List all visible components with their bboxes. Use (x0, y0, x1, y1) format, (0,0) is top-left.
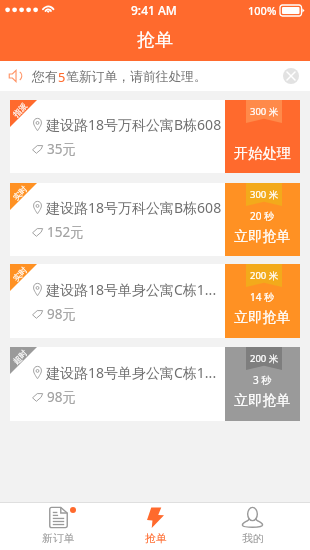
button[interactable]: 14 秒 (225, 264, 300, 338)
staticText: 建设路18号万科公寓B栋608 (46, 198, 222, 217)
staticText: 超时 (11, 348, 29, 366)
button[interactable]: 20 秒 (225, 183, 300, 256)
button[interactable]: 建设路18号万科公寓B栋608 (10, 183, 300, 256)
staticText: 建设路18号单身公寓C栋1... (46, 363, 217, 382)
button[interactable]: 关闭 (283, 68, 299, 84)
button[interactable]: 3 秒 (225, 347, 300, 421)
staticText: 300 米 (250, 105, 279, 118)
staticText: 5 (58, 68, 66, 85)
staticText: 立即抢单 (234, 308, 291, 326)
staticText: 开始处理 (234, 144, 291, 162)
staticText: 300 米 (250, 188, 279, 201)
staticText: 9:41 AM (131, 2, 177, 18)
staticText: 建设路18号单身公寓C栋1... (46, 280, 217, 299)
staticText: 实时 (11, 265, 29, 283)
button[interactable]: 建设路18号单身公寓C栋1... (10, 264, 300, 338)
staticText: 立即抢单 (234, 227, 291, 245)
button[interactable]: 开始处理 (225, 100, 300, 173)
button[interactable]: 建设路18号单身公寓C栋1... (10, 347, 300, 421)
staticText: 14 秒 (250, 290, 275, 304)
staticText: 200 米 (250, 269, 279, 282)
staticText: 152元 (47, 223, 84, 241)
staticText: 立即抢单 (234, 391, 291, 409)
staticText: 35元 (47, 140, 76, 158)
staticText: 我的 (242, 532, 264, 546)
staticText: 200 米 (250, 352, 279, 365)
staticText: 笔新订单，请前往处理。 (66, 69, 207, 85)
staticText: 20 秒 (250, 209, 275, 223)
staticText: 指派 (11, 101, 29, 119)
button[interactable]: 新订单 (9, 503, 107, 550)
staticText: 建设路18号万科公寓B栋608 (46, 115, 222, 134)
button[interactable]: 抢单 (107, 503, 204, 550)
staticText: 98元 (47, 305, 76, 323)
staticText: 抢单 (145, 532, 167, 546)
staticText: 新订单 (42, 532, 75, 546)
button[interactable]: 我的 (204, 503, 301, 550)
staticText: 100% (248, 3, 277, 18)
staticText: 3 秒 (253, 373, 272, 387)
staticText: 您有 (32, 69, 58, 85)
staticText: 抢单 (137, 29, 173, 52)
staticText: 实时 (11, 184, 29, 202)
button[interactable]: 建设路18号万科公寓B栋608 (10, 100, 300, 173)
staticText: 98元 (47, 388, 76, 406)
